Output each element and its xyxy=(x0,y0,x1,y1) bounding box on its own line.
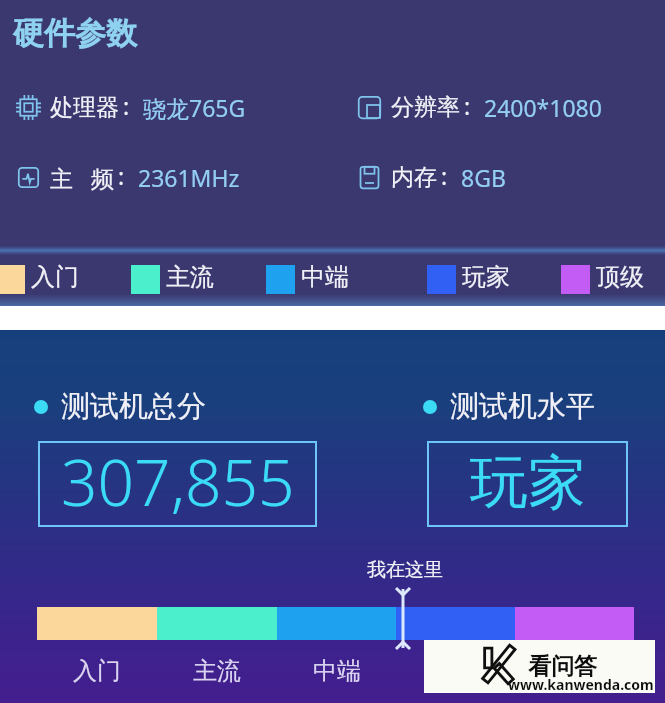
other: Clock speed xyxy=(16,165,41,190)
staticText: : xyxy=(464,90,471,121)
button[interactable]: 主流 xyxy=(131,264,214,294)
button[interactable]: 测试机总分 xyxy=(34,388,206,425)
staticText: 硬件参数 xyxy=(13,14,137,53)
staticText: 测试机总分 xyxy=(61,388,206,425)
staticText: 玩家 xyxy=(462,262,510,292)
button[interactable]: Resolution xyxy=(357,92,602,123)
staticText: 骁龙765G xyxy=(143,92,246,123)
staticText: : xyxy=(118,160,125,191)
staticText: 主流 xyxy=(166,262,214,292)
staticText: 主流 xyxy=(193,656,241,686)
staticText: 8GB xyxy=(461,162,506,193)
staticText: 顶级 xyxy=(596,262,644,292)
staticText: 入门 xyxy=(31,262,79,292)
button[interactable]: 顶级 xyxy=(561,264,644,294)
staticText: : xyxy=(441,160,448,191)
other: Resolution xyxy=(357,95,382,120)
other: Memory xyxy=(357,165,382,190)
staticText: 主 频 xyxy=(50,162,114,193)
staticText: www.kanwenda.com xyxy=(508,675,654,694)
staticText: 我在这里 xyxy=(367,558,443,582)
button[interactable]: Processor xyxy=(16,92,246,123)
button[interactable]: 玩家 xyxy=(427,264,510,294)
button[interactable]: 中端 xyxy=(266,264,349,294)
staticText: 2400*1080 xyxy=(484,92,602,123)
staticText: 玩家 xyxy=(470,446,586,519)
staticText: 看问答 xyxy=(528,652,597,681)
staticText: 307,855 xyxy=(61,438,295,524)
staticText: 内存 xyxy=(391,163,437,192)
button[interactable]: Memory xyxy=(357,162,506,193)
staticText: : xyxy=(123,90,130,121)
staticText: 分辨率 xyxy=(391,93,460,122)
staticText: 2361MHz xyxy=(138,162,240,193)
other: Processor xyxy=(16,95,41,120)
staticText: 处理器 xyxy=(50,93,119,122)
staticText: 中端 xyxy=(313,656,361,686)
button[interactable]: Clock speed xyxy=(16,162,240,193)
button[interactable]: 入门 xyxy=(0,264,79,294)
staticText: 测试机水平 xyxy=(450,388,595,425)
staticText: 入门 xyxy=(73,656,121,686)
button[interactable]: 测试机水平 xyxy=(423,388,595,425)
staticText: 中端 xyxy=(301,262,349,292)
